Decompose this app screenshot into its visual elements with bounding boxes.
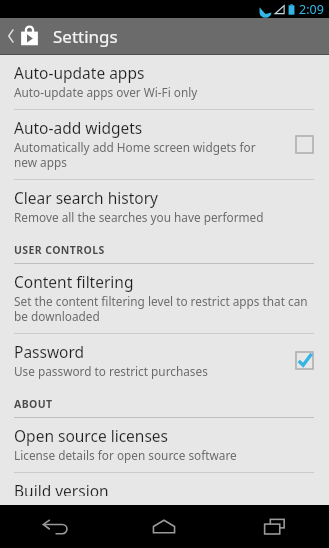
button[interactable]: Unchecked <box>291 131 317 157</box>
staticText: Settings <box>53 25 118 48</box>
staticText: Clear search history <box>14 187 158 208</box>
button[interactable]: Content filtering <box>0 264 329 333</box>
button[interactable]: Navigate up <box>4 25 43 47</box>
staticText: Build version <box>14 480 109 496</box>
staticText: Use password to restrict purchases <box>14 363 208 379</box>
button[interactable]: Back <box>0 505 109 548</box>
button[interactable]: Open source licenses <box>0 418 329 472</box>
staticText: 2:09 <box>299 1 324 18</box>
button[interactable]: Checked <box>291 347 317 373</box>
staticText: Auto-update apps <box>14 62 145 83</box>
staticText: ABOUT <box>14 397 53 411</box>
button[interactable]: Build version <box>0 473 329 505</box>
staticText: USER CONTROLS <box>14 243 105 257</box>
staticText: Set the content filtering level to restr… <box>14 293 317 324</box>
staticText: Automatically add Home screen widgets fo… <box>14 139 281 170</box>
button[interactable]: Clear search history <box>0 180 329 234</box>
staticText: Remove all the searches you have perform… <box>14 209 264 225</box>
button[interactable]: Home <box>109 505 219 548</box>
staticText: Password <box>14 341 85 362</box>
button[interactable]: Password <box>0 334 329 388</box>
staticText: Content filtering <box>14 271 134 292</box>
button[interactable]: Auto-add widgets <box>0 110 329 179</box>
button[interactable]: Auto-update apps <box>0 55 329 109</box>
staticText: License details for open source software <box>14 447 237 463</box>
staticText: Open source licenses <box>14 425 169 446</box>
button[interactable]: Recent apps <box>219 505 329 548</box>
staticText: Auto-add widgets <box>14 117 143 138</box>
staticText: Auto-update apps over Wi-Fi only <box>14 84 198 100</box>
